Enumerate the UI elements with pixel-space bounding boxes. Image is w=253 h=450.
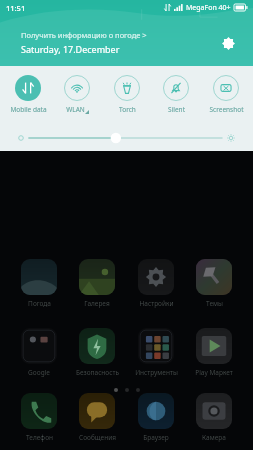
staticText: Браузер (143, 433, 169, 442)
staticText: MegaFon 40+ (186, 3, 231, 13)
button[interactable]: Silent (152, 74, 200, 115)
staticText: 11:51 (6, 3, 26, 13)
button[interactable]: Play Маркет (186, 327, 242, 378)
button[interactable]: Галерея (69, 258, 125, 309)
staticText: Настройки (139, 299, 174, 308)
button[interactable]: Google (11, 327, 67, 378)
button[interactable]: Mobile data (4, 74, 52, 115)
staticText: Безопасность (76, 368, 119, 377)
staticText: Torch (119, 105, 136, 114)
staticText: Play Маркет (195, 368, 233, 377)
staticText: Камера (202, 433, 226, 442)
staticText: Телефон (26, 433, 53, 442)
staticText: Получить информацию о погоде > (21, 30, 147, 40)
button[interactable]: Телефон (11, 392, 67, 443)
button[interactable]: Torch (103, 74, 151, 115)
staticText: Screenshot (209, 105, 244, 114)
button[interactable]: Инструменты (128, 327, 184, 378)
staticText: Silent (168, 105, 185, 114)
staticText: Mobile data (10, 105, 47, 114)
button[interactable]: Безопасность (69, 327, 125, 378)
staticText: Инструменты (135, 368, 178, 377)
button[interactable]: Settings (215, 30, 241, 56)
button[interactable]: Погода (11, 258, 67, 309)
button[interactable]: Получить информацию о погоде > (21, 30, 147, 55)
button[interactable]: Камера (186, 392, 242, 443)
staticText: Темы (206, 299, 223, 308)
button[interactable]: Screenshot (202, 74, 250, 115)
staticText: Сообщения (79, 433, 116, 442)
staticText: Погода (28, 299, 51, 308)
button[interactable]: Настройки (128, 258, 184, 309)
staticText: Saturday, 17.December (21, 43, 120, 55)
staticText: WLAN (66, 105, 85, 114)
button[interactable]: Brightness (18, 127, 235, 149)
button[interactable]: Темы (186, 258, 242, 309)
button[interactable]: Браузер (128, 392, 184, 443)
staticText: Google (28, 368, 50, 377)
staticText: Галерея (84, 299, 110, 308)
button[interactable]: WLAN (53, 74, 101, 115)
button[interactable]: Сообщения (69, 392, 125, 443)
